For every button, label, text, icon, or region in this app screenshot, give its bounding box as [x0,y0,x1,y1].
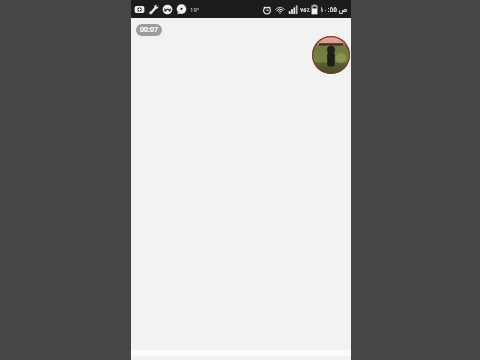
staticText: ص ١٠:٥٥ [320,5,348,15]
staticText: 19° [190,6,200,14]
staticText: ٧٥٪ [300,6,310,13]
button[interactable]: 00:07 [136,24,162,36]
staticText: 00:07 [140,25,158,35]
button[interactable]: Profile photo [312,36,350,74]
